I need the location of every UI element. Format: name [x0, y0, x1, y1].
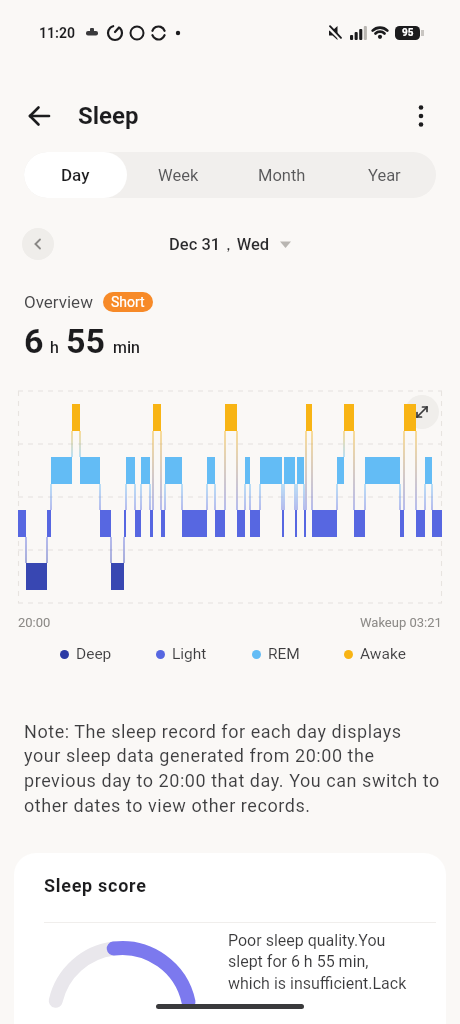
staticText: Wakeup 03:21 — [360, 615, 442, 630]
staticText: 55 — [66, 321, 106, 361]
staticText: Awake — [360, 645, 406, 663]
staticText: Note: The sleep record for each day disp… — [24, 721, 440, 817]
button[interactable] — [18, 389, 442, 607]
staticText: Month — [258, 166, 306, 185]
staticText: Year — [368, 166, 401, 185]
staticText: Overview — [24, 292, 93, 312]
staticText: REM — [268, 645, 300, 663]
staticText: 95 — [402, 27, 414, 39]
button[interactable]: Month — [230, 152, 333, 198]
button[interactable] — [22, 228, 54, 260]
staticText: Short — [111, 294, 145, 310]
button[interactable]: Short — [103, 292, 153, 312]
button[interactable] — [28, 104, 52, 128]
staticText: Light — [172, 645, 207, 663]
staticText: Sleep score — [44, 875, 147, 896]
staticText: Day — [61, 165, 90, 185]
button[interactable] — [412, 104, 430, 128]
button[interactable]: Sleep score — [14, 853, 446, 1024]
button[interactable]: Dec 31，Wed — [169, 234, 291, 255]
staticText: Week — [158, 166, 199, 185]
staticText: 11:20 — [39, 25, 76, 41]
staticText: 6 — [24, 321, 44, 361]
button[interactable]: Day — [24, 152, 127, 198]
staticText: Deep — [76, 645, 112, 663]
staticText: min — [113, 338, 140, 357]
staticText: 20:00 — [18, 615, 51, 630]
button[interactable]: Week — [127, 152, 230, 198]
staticText: Dec 31，Wed — [169, 234, 270, 255]
staticText: h — [50, 338, 59, 357]
staticText: Sleep — [78, 102, 139, 130]
button[interactable]: Year — [333, 152, 436, 198]
staticText: Poor sleep quality.You slept for 6 h 55 … — [228, 931, 407, 993]
